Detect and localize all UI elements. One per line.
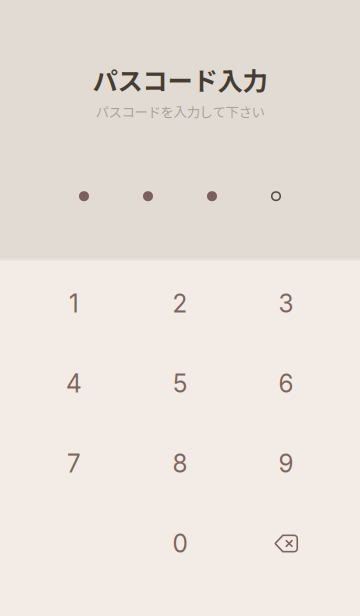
staticText: 9 (278, 449, 293, 478)
button[interactable]: 2 (127, 263, 233, 343)
staticText: 1 (69, 289, 79, 318)
staticText: 8 (172, 449, 187, 478)
staticText: 4 (66, 369, 82, 398)
staticText: パスコードを入力して下さい (95, 102, 264, 121)
staticText: 2 (172, 289, 187, 318)
button[interactable]: 8 (127, 423, 233, 503)
button[interactable]: 3 (233, 263, 339, 343)
staticText: 0 (172, 529, 187, 558)
button[interactable]: 5 (127, 343, 233, 423)
button[interactable]: 6 (233, 343, 339, 423)
staticText: 3 (278, 289, 293, 318)
button[interactable]: 7 (21, 423, 127, 503)
staticText: 5 (173, 369, 187, 398)
staticText: 6 (278, 369, 293, 398)
button[interactable]: 1 (21, 263, 127, 343)
button[interactable]: 0 (127, 503, 233, 583)
button[interactable]: Delete (233, 503, 339, 583)
staticText: パスコード入力 (92, 61, 267, 98)
staticText: 7 (67, 449, 81, 478)
button[interactable]: 4 (21, 343, 127, 423)
button[interactable]: 9 (233, 423, 339, 503)
